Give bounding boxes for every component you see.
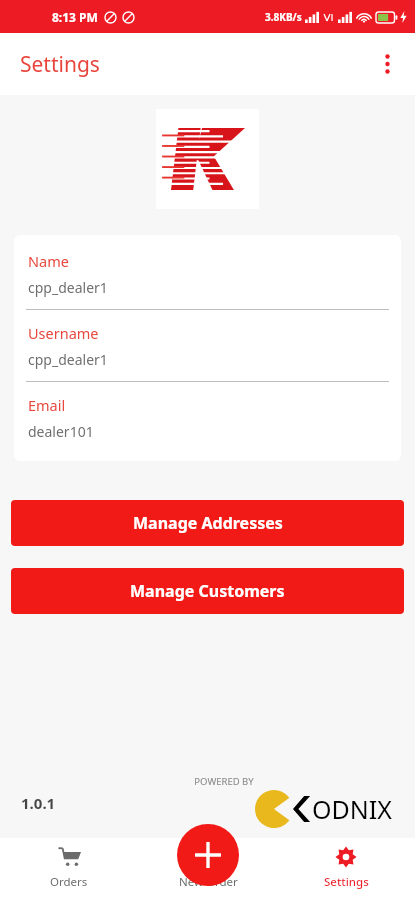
staticText: dealer101 (28, 422, 94, 441)
staticText: Username (28, 323, 99, 343)
staticText: cpp_dealer1 (28, 278, 108, 297)
staticText: Settings (324, 874, 369, 890)
staticText: POWERED BY (183, 775, 265, 788)
staticText: ODNIX (312, 792, 392, 826)
button[interactable]: New Order (177, 824, 239, 886)
staticText: Orders (50, 874, 88, 890)
button[interactable]: Orders (0, 838, 138, 900)
staticText: 1.0.1 (21, 793, 56, 813)
staticText: cpp_dealer1 (28, 350, 108, 369)
staticText: Manage Addresses (133, 512, 283, 534)
staticText: 8:13 PM (52, 9, 98, 25)
button[interactable]: Manage Customers (11, 568, 404, 614)
button[interactable]: Settings (277, 838, 415, 900)
staticText: 3.8KB/s (265, 10, 302, 24)
staticText: Settings (20, 50, 100, 79)
staticText: Manage Customers (130, 580, 285, 602)
staticText: Name (28, 251, 69, 271)
button[interactable]: Manage Addresses (11, 500, 404, 546)
button[interactable]: New Order (139, 838, 277, 900)
staticText: New Order (179, 874, 238, 890)
button[interactable]: More options (365, 42, 409, 86)
staticText: Email (28, 395, 66, 415)
